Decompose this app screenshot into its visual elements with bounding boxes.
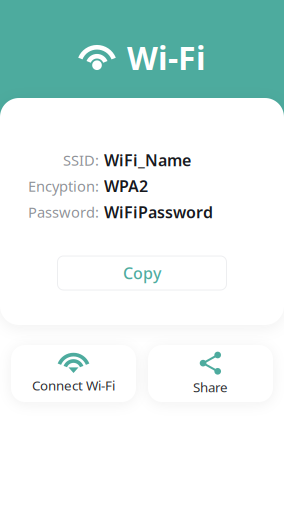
staticText: WPA2: [104, 175, 148, 197]
staticText: SSID:: [63, 150, 99, 170]
staticText: Connect Wi-Fi: [32, 376, 115, 394]
staticText: Password:: [28, 202, 99, 222]
staticText: Wi-Fi: [127, 36, 206, 79]
staticText: Encyption:: [28, 176, 99, 196]
button[interactable]: Copy: [57, 256, 226, 290]
button[interactable]: Share: [148, 345, 273, 402]
staticText: Share: [193, 378, 228, 396]
staticText: Copy: [123, 262, 161, 284]
staticText: WiFiPassword: [104, 201, 213, 223]
staticText: WiFi_Name: [104, 149, 191, 171]
button[interactable]: Connect Wi-Fi: [11, 345, 136, 402]
